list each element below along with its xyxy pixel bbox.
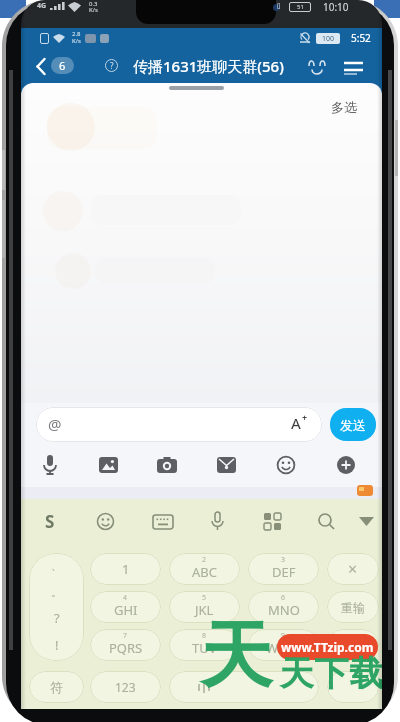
- staticText: 5:52: [351, 31, 371, 45]
- staticText: 多选: [331, 99, 357, 115]
- staticText: GHI: [114, 601, 138, 619]
- staticText: 123: [115, 679, 136, 695]
- button[interactable]: 7: [90, 629, 161, 661]
- button[interactable]: [359, 517, 374, 527]
- staticText: 传播1631班聊天群(56): [133, 56, 284, 76]
- staticText: 4G: [37, 1, 47, 11]
- staticText: K/s: [72, 37, 81, 44]
- staticText: 重输: [341, 600, 365, 615]
- staticText: TUV: [192, 639, 217, 657]
- button[interactable]: 5: [169, 591, 240, 623]
- staticText: 0.3: [89, 0, 98, 7]
- button[interactable]: 9: [248, 629, 319, 661]
- button[interactable]: 1: [90, 553, 161, 585]
- button[interactable]: [327, 671, 379, 703]
- staticText: 10:10: [323, 0, 349, 12]
- staticText: 5: [202, 593, 207, 603]
- button[interactable]: 2: [169, 553, 240, 585]
- staticText: 天下载: [279, 652, 382, 695]
- button[interactable]: [153, 515, 173, 529]
- button[interactable]: [318, 513, 335, 530]
- button[interactable]: [337, 456, 355, 474]
- button[interactable]: 、: [29, 553, 84, 661]
- button[interactable]: 重输: [327, 591, 379, 623]
- button[interactable]: [308, 60, 327, 75]
- staticText: 发送: [340, 417, 366, 433]
- button[interactable]: [97, 513, 114, 530]
- button[interactable]: 多选: [321, 98, 367, 116]
- button[interactable]: 4: [90, 591, 161, 623]
- staticText: ▯: [277, 2, 281, 10]
- staticText: DEF: [272, 563, 296, 581]
- button[interactable]: [36, 59, 46, 74]
- button[interactable]: 8: [169, 629, 240, 661]
- staticText: 天: [200, 611, 272, 702]
- button[interactable]: 3: [248, 553, 319, 585]
- button[interactable]: [42, 455, 58, 475]
- staticText: 6: [59, 58, 66, 73]
- staticText: ABC: [192, 563, 217, 581]
- button[interactable]: www.TTzip.com: [277, 634, 378, 660]
- staticText: S: [45, 510, 55, 533]
- staticText: 2.8: [72, 30, 81, 37]
- staticText: MNO: [268, 601, 300, 619]
- staticText: ?: [110, 60, 114, 71]
- button[interactable]: 123: [90, 671, 161, 703]
- staticText: 9: [281, 631, 286, 641]
- button[interactable]: [211, 512, 224, 531]
- staticText: 6: [281, 593, 286, 603]
- staticText: ?: [54, 609, 60, 627]
- staticText: 100: [322, 34, 335, 44]
- staticText: 3: [281, 555, 286, 565]
- button[interactable]: [327, 629, 379, 661]
- button[interactable]: [99, 457, 118, 473]
- staticText: www.TTzip.com: [281, 639, 374, 655]
- staticText: 4: [123, 593, 128, 603]
- staticText: 2: [202, 555, 207, 565]
- button[interactable]: 符: [29, 671, 84, 703]
- button[interactable]: 6: [51, 57, 74, 74]
- button[interactable]: [157, 457, 177, 473]
- staticText: 、: [51, 559, 62, 573]
- staticText: !: [55, 636, 59, 654]
- staticText: 。: [51, 585, 62, 599]
- staticText: ×: [348, 558, 358, 580]
- button[interactable]: 6: [248, 591, 319, 623]
- button[interactable]: [264, 513, 281, 530]
- button[interactable]: [169, 671, 319, 703]
- staticText: A: [291, 413, 301, 433]
- staticText: 7: [123, 631, 128, 641]
- staticText: 8: [202, 631, 207, 641]
- button[interactable]: 发送: [330, 408, 376, 441]
- button[interactable]: @: [36, 407, 322, 442]
- staticText: @: [48, 414, 62, 434]
- staticText: 符: [50, 679, 63, 695]
- button[interactable]: [277, 456, 295, 474]
- staticText: +: [302, 411, 308, 423]
- staticText: 51: [297, 3, 304, 11]
- staticText: 1: [122, 560, 130, 578]
- staticText: WXYZ: [266, 639, 301, 657]
- button[interactable]: ×: [327, 553, 379, 585]
- staticText: K/s: [89, 6, 98, 13]
- staticText: PQRS: [109, 639, 143, 657]
- button[interactable]: S: [38, 509, 62, 533]
- button[interactable]: [344, 61, 363, 74]
- staticText: JKL: [195, 601, 214, 619]
- button[interactable]: [217, 457, 236, 473]
